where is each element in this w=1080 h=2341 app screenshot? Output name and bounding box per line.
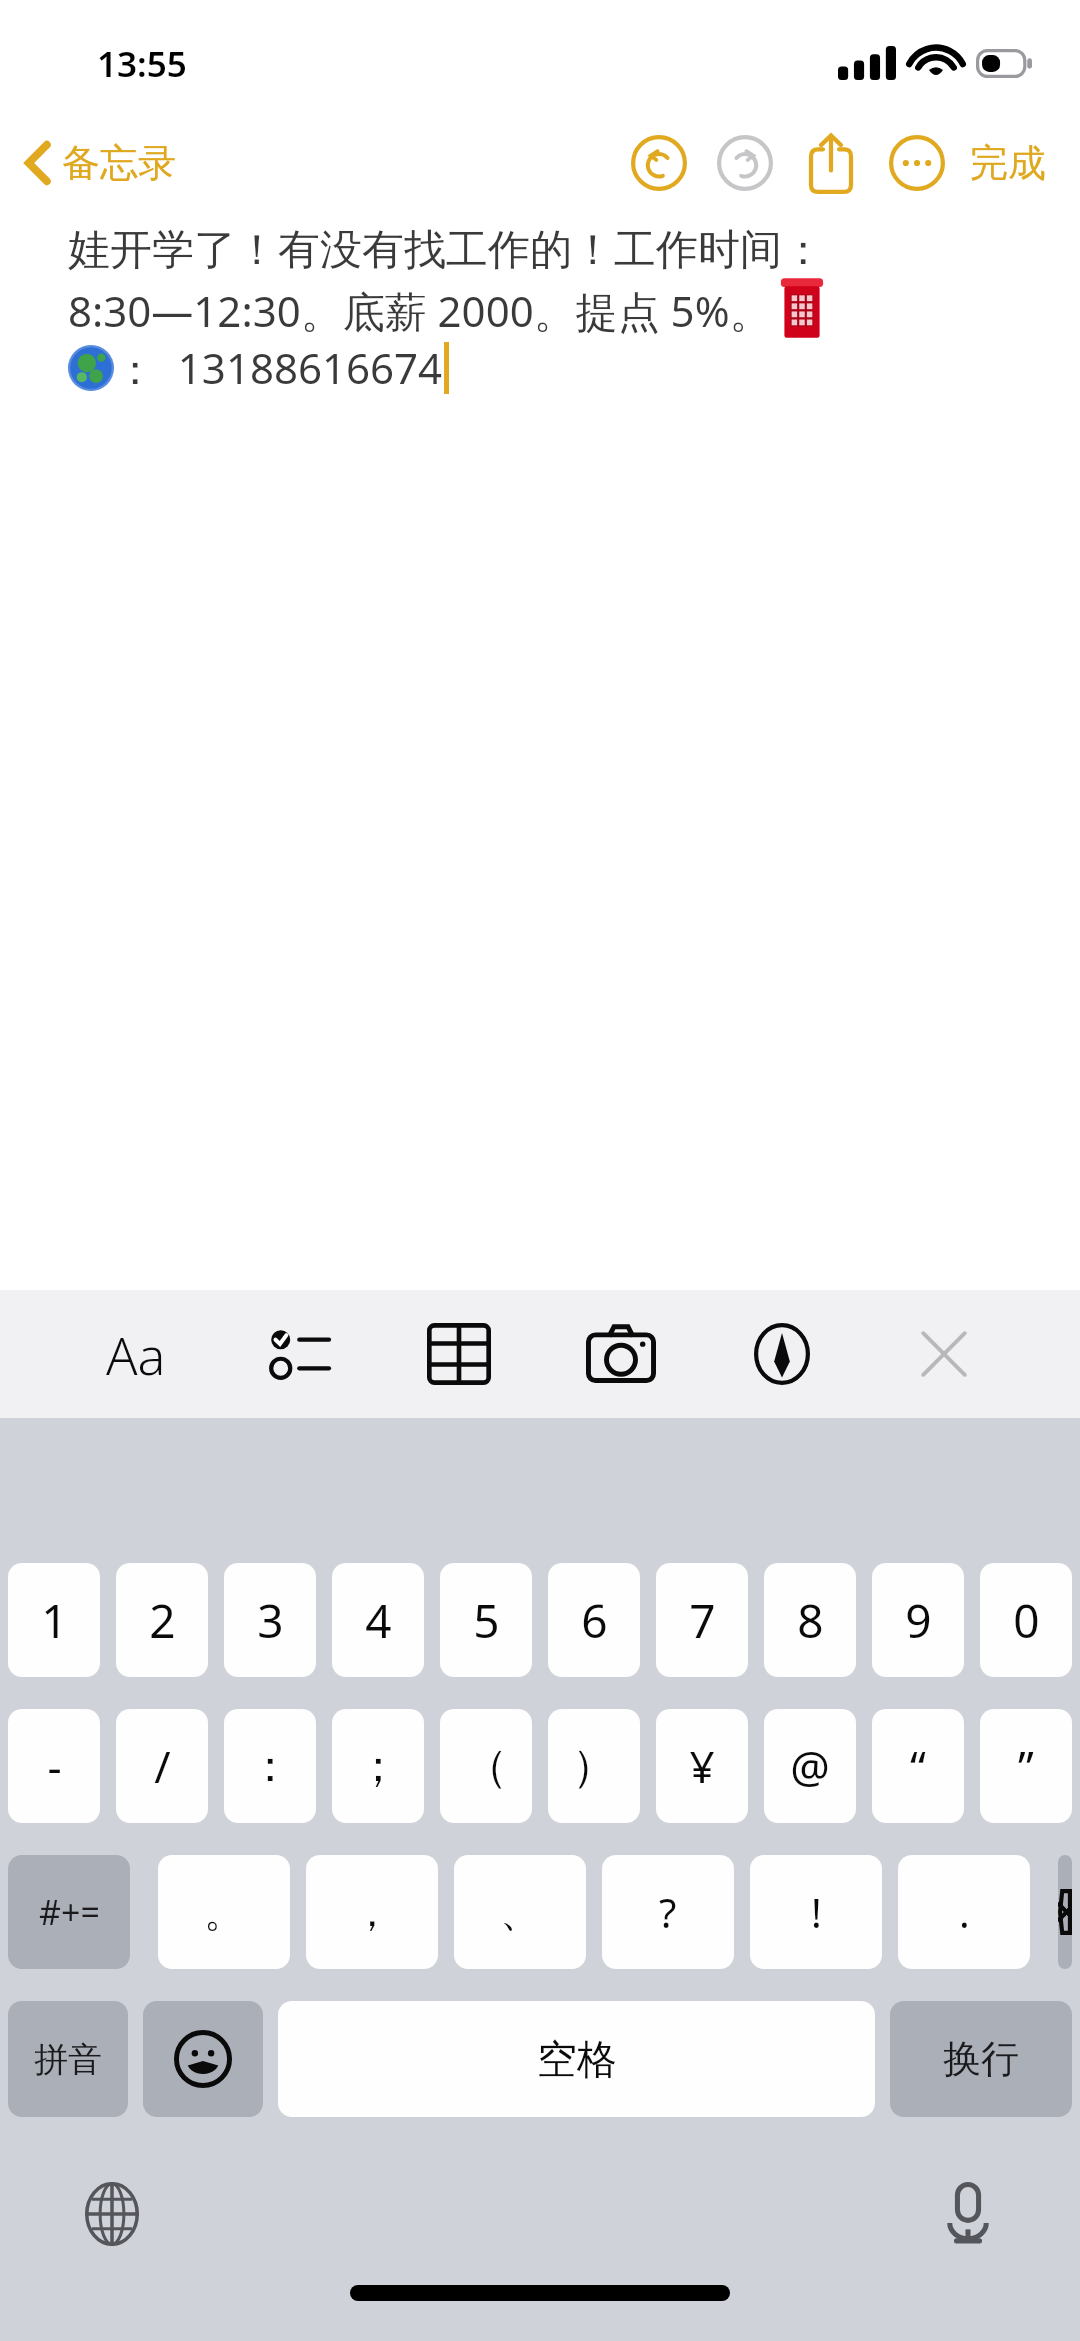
staticText: 4 bbox=[365, 1589, 392, 1652]
button[interactable]: 空格 bbox=[278, 2001, 875, 2117]
staticText: . bbox=[959, 1885, 970, 1939]
button[interactable]: 5 bbox=[440, 1563, 532, 1677]
staticText: 3 bbox=[257, 1589, 284, 1652]
staticText: “ bbox=[910, 1736, 926, 1796]
staticText: 13:55 bbox=[97, 40, 187, 88]
button[interactable]: 3 bbox=[224, 1563, 316, 1677]
button[interactable]: @ bbox=[764, 1709, 856, 1823]
button[interactable]: ! bbox=[750, 1855, 882, 1969]
button[interactable]: （ bbox=[440, 1709, 532, 1823]
button[interactable]: 6 bbox=[548, 1563, 640, 1677]
staticText: 、 bbox=[500, 1887, 540, 1937]
staticText: 8 bbox=[797, 1589, 824, 1652]
staticText: 备忘录 bbox=[62, 139, 176, 187]
button[interactable]: 娃开学了！有没有找工作的！工作时间： bbox=[0, 210, 1080, 1290]
staticText: 7 bbox=[689, 1589, 716, 1652]
staticText: ! bbox=[811, 1885, 822, 1939]
button[interactable]: 完成 bbox=[960, 129, 1060, 197]
button[interactable]: 拼音 bbox=[8, 2001, 128, 2117]
button[interactable]: More options bbox=[874, 120, 960, 206]
staticText: - bbox=[47, 1736, 62, 1796]
staticText: ? bbox=[659, 1885, 677, 1939]
staticText: ： bbox=[248, 1739, 292, 1794]
button[interactable]: . bbox=[898, 1855, 1030, 1969]
staticText: 6 bbox=[581, 1589, 608, 1652]
staticText: ” bbox=[1018, 1736, 1034, 1796]
staticText: 空格 bbox=[537, 2034, 617, 2084]
staticText: ¥ bbox=[689, 1736, 715, 1796]
button[interactable]: Dictation bbox=[928, 2174, 1008, 2254]
button[interactable]: Close keyboard bbox=[894, 1299, 994, 1409]
staticText: #+= bbox=[39, 1889, 100, 1935]
button[interactable]: Markup bbox=[732, 1299, 832, 1409]
button[interactable]: / bbox=[116, 1709, 208, 1823]
staticText: 0 bbox=[1013, 1589, 1040, 1652]
button[interactable]: 2 bbox=[116, 1563, 208, 1677]
button[interactable]: 9 bbox=[872, 1563, 964, 1677]
button[interactable]: 8 bbox=[764, 1563, 856, 1677]
button[interactable]: ? bbox=[602, 1855, 734, 1969]
staticText: 2 bbox=[149, 1589, 176, 1652]
button[interactable]: Emoji bbox=[143, 2001, 263, 2117]
button[interactable]: Text format bbox=[86, 1299, 186, 1409]
button[interactable]: “ bbox=[872, 1709, 964, 1823]
staticText: 9 bbox=[905, 1589, 932, 1652]
staticText: 5 bbox=[473, 1589, 500, 1652]
button[interactable]: Share bbox=[788, 120, 874, 206]
button[interactable]: 0 bbox=[980, 1563, 1072, 1677]
staticText: 。 bbox=[204, 1887, 244, 1937]
staticText: 拼音 bbox=[34, 2038, 102, 2081]
button[interactable]: Redo bbox=[702, 120, 788, 206]
staticText: @ bbox=[790, 1736, 830, 1796]
button[interactable]: 。 bbox=[158, 1855, 290, 1969]
staticText: 娃开学了！有没有找工作的！工作时间： bbox=[68, 224, 824, 277]
staticText: ： 13188616674 bbox=[114, 339, 443, 396]
staticText: 8:30—12:30。底薪 2000。提点 5%。 bbox=[68, 282, 772, 339]
staticText: ） bbox=[572, 1739, 616, 1794]
button[interactable]: ¥ bbox=[656, 1709, 748, 1823]
button[interactable]: 4 bbox=[332, 1563, 424, 1677]
button[interactable]: ” bbox=[980, 1709, 1072, 1823]
staticText: ， bbox=[352, 1887, 392, 1937]
button[interactable]: Camera bbox=[571, 1299, 671, 1409]
button[interactable]: Backspace bbox=[1058, 1855, 1072, 1969]
button[interactable]: 换行 bbox=[890, 2001, 1072, 2117]
staticText: ； bbox=[356, 1739, 400, 1794]
button[interactable]: ； bbox=[332, 1709, 424, 1823]
button[interactable]: Checklist bbox=[248, 1299, 348, 1409]
button[interactable]: Table bbox=[409, 1299, 509, 1409]
button[interactable]: 备忘录 bbox=[0, 131, 188, 195]
button[interactable]: Switch keyboard bbox=[72, 2174, 152, 2254]
staticText: Aa bbox=[106, 1319, 166, 1390]
staticText: 1 bbox=[41, 1589, 68, 1652]
button[interactable]: ： bbox=[224, 1709, 316, 1823]
button[interactable]: - bbox=[8, 1709, 100, 1823]
staticText: 换行 bbox=[943, 2035, 1019, 2083]
button[interactable]: Undo bbox=[616, 120, 702, 206]
button[interactable]: #+= bbox=[8, 1855, 130, 1969]
staticText: （ bbox=[464, 1739, 508, 1794]
staticText: 完成 bbox=[970, 139, 1046, 187]
staticText: / bbox=[154, 1736, 171, 1796]
button[interactable]: 、 bbox=[454, 1855, 586, 1969]
button[interactable]: 7 bbox=[656, 1563, 748, 1677]
button[interactable]: ） bbox=[548, 1709, 640, 1823]
button[interactable]: 1 bbox=[8, 1563, 100, 1677]
button[interactable]: ， bbox=[306, 1855, 438, 1969]
